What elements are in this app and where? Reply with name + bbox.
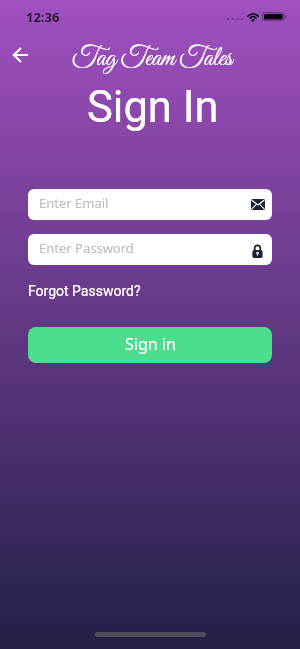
staticText: Sign In bbox=[87, 82, 219, 133]
button[interactable]: Forgot Password? bbox=[28, 283, 141, 299]
staticText: 12:36 bbox=[26, 8, 60, 26]
button[interactable]: Enter Password bbox=[28, 234, 272, 265]
staticText: Enter Email bbox=[39, 194, 109, 212]
staticText: Sign in bbox=[125, 333, 176, 355]
staticText: Forgot Password? bbox=[28, 283, 141, 299]
staticText: Enter Password bbox=[39, 239, 134, 257]
staticText: Tag Team Tales bbox=[72, 42, 233, 75]
button[interactable]: Enter Email bbox=[28, 189, 272, 220]
button[interactable] bbox=[6, 41, 34, 68]
button[interactable]: Sign in bbox=[28, 327, 272, 363]
